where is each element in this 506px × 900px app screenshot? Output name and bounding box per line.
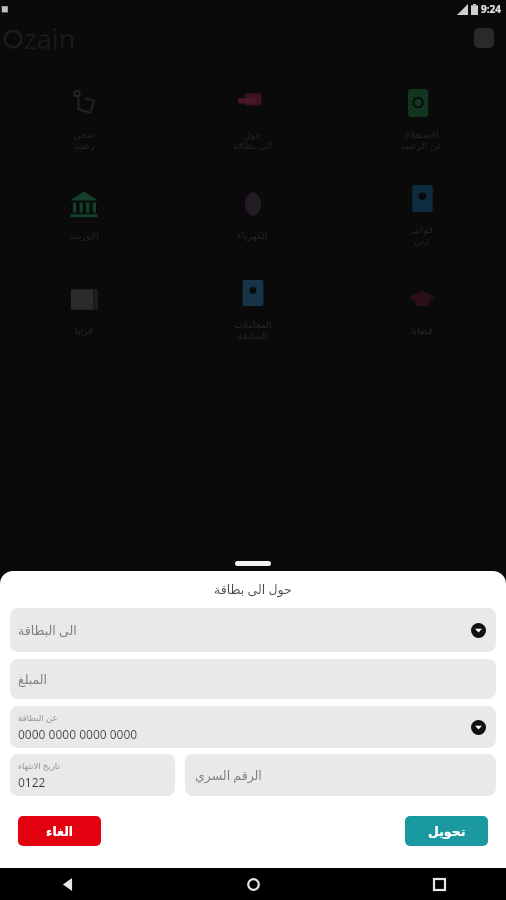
staticText: الرقم السري: [195, 767, 262, 784]
button[interactable]: Profile: [474, 28, 494, 48]
staticText: تحويل: [428, 824, 466, 839]
button[interactable]: المبلغ: [10, 659, 496, 699]
staticText: 0000 0000 0000 0000: [18, 726, 138, 742]
staticText: الاوزيت: [69, 230, 99, 241]
staticText: فواتير زين: [410, 224, 433, 247]
staticText: 0122: [18, 774, 46, 790]
staticText: عن البطاقة: [18, 712, 58, 724]
button[interactable]: حول الى بطاقة: [168, 70, 337, 165]
staticText: تاريخ الانتهاء: [18, 760, 60, 772]
button[interactable]: الاستعلام عن الرصيد: [337, 70, 506, 165]
staticText: قرايا: [75, 325, 93, 336]
button[interactable]: تاريخ الانتهاء: [10, 754, 175, 796]
button[interactable]: المعاملات السابقة: [168, 260, 337, 355]
staticText: 9:24: [481, 2, 501, 16]
button[interactable]: Home: [238, 869, 268, 899]
button[interactable]: الرقم السري: [185, 754, 496, 796]
staticText: الكهرباء: [237, 230, 268, 241]
button[interactable]: Open dropdown: [471, 720, 486, 735]
button[interactable]: Open dropdown: [471, 623, 486, 638]
button[interactable]: Back: [52, 869, 82, 899]
button[interactable]: قرايا: [0, 260, 168, 355]
staticText: الغاء: [46, 824, 74, 839]
staticText: zain: [24, 20, 76, 57]
button[interactable]: الاوزيت: [0, 165, 168, 260]
staticText: حول الى بطاقة: [233, 129, 272, 152]
button[interactable]: تحويل: [405, 816, 488, 846]
staticText: قضايا: [411, 325, 433, 336]
button[interactable]: الكهرباء: [168, 165, 337, 260]
staticText: الى البطاقة: [18, 622, 77, 639]
staticText: حول الى بطاقة: [214, 581, 292, 598]
staticText: الاستعلام عن الرصيد: [400, 129, 443, 152]
button[interactable]: فواتير زين: [337, 165, 506, 260]
button[interactable]: قضايا: [337, 260, 506, 355]
button[interactable]: الى البطاقة: [10, 608, 496, 652]
button[interactable]: Recent apps: [424, 869, 454, 899]
button[interactable]: الغاء: [18, 816, 101, 846]
staticText: المبلغ: [18, 672, 48, 687]
button[interactable]: عن البطاقة: [10, 706, 496, 748]
staticText: المعاملات السابقة: [233, 319, 272, 342]
staticText: شحن رصيد: [73, 129, 95, 152]
